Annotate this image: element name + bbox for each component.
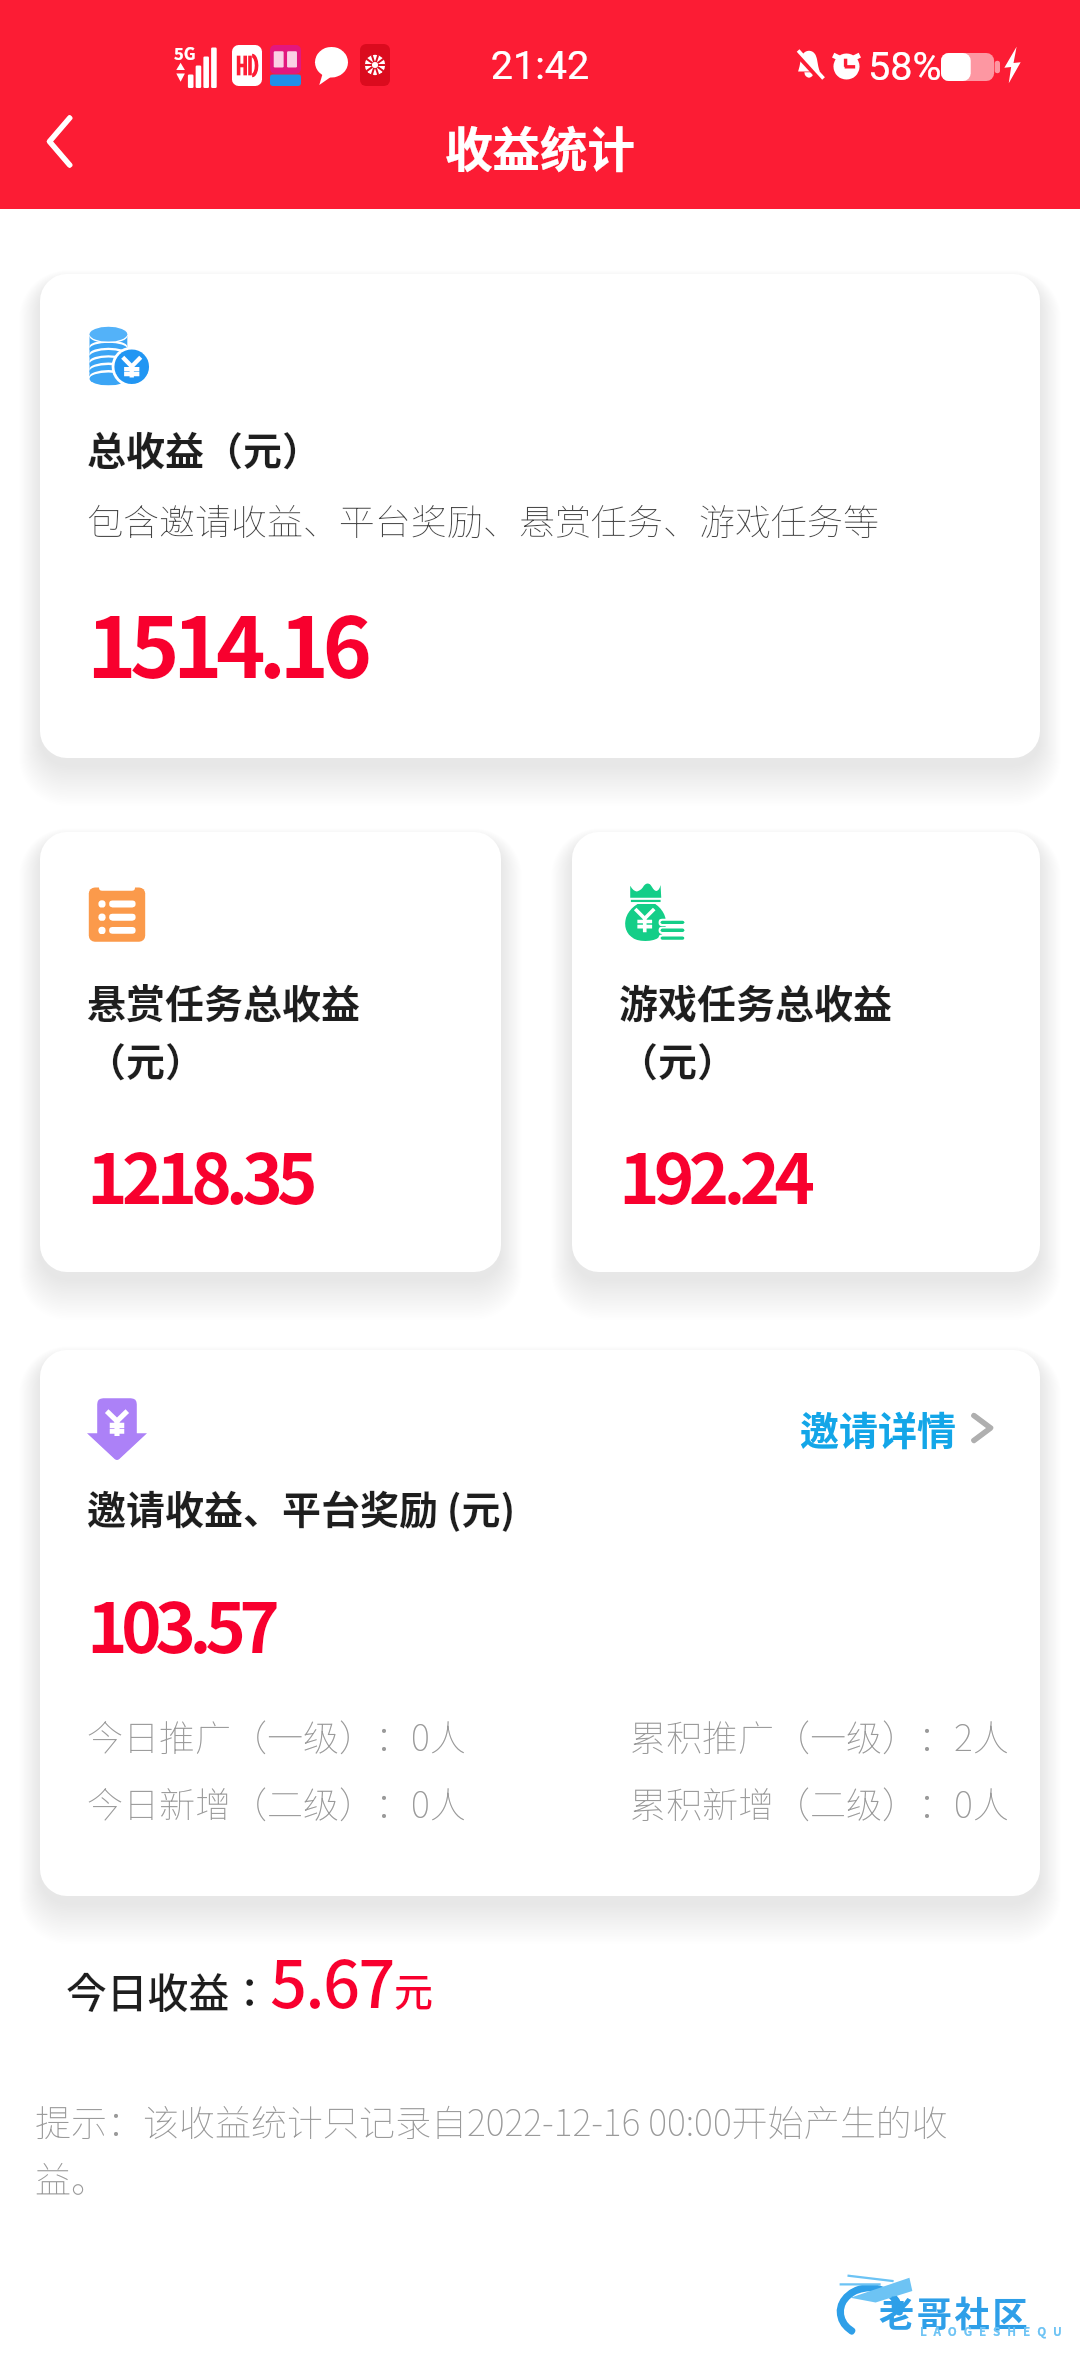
staticText: 1514.16 [87,581,366,703]
staticText: 累积推广（一级）：2人 [630,1709,1009,1760]
staticText: 103.57 [87,1573,274,1673]
staticText: 今日收益： [66,1961,270,2020]
staticText: 21:42 [0,42,1080,88]
button[interactable]: 总收益（元） [40,274,1040,758]
button[interactable]: 游戏任务总收益 （元） [572,832,1040,1272]
staticText: 1218.35 [87,1124,312,1224]
staticText: 元 [394,1961,434,2017]
staticText: 提示：该收益统计只记录自2022-12-16 00:00开始产生的收益。 [35,2094,971,2204]
staticText: 邀请详情 [800,1400,957,1456]
staticText: 老哥社区 [879,2286,1031,2337]
staticText: 今日新增（二级）：0人 [87,1776,466,1827]
staticText: 5G [174,41,196,65]
staticText: 58% [868,43,942,89]
staticText: 游戏任务总收益 （元） [619,973,893,1088]
staticText: 5.67 [270,1932,394,2026]
staticText: 192.24 [619,1124,809,1224]
button[interactable]: 邀请详情 [40,1350,1040,1896]
staticText: LAOGESHEQU [920,2322,1069,2339]
button[interactable]: 悬赏任务总收益 （元） [40,832,501,1272]
button[interactable]: Back [0,90,119,192]
staticText: 包含邀请收益、平台奖励、悬赏任务、游戏任务等 [87,493,880,545]
staticText: 累积新增（二级）：0人 [630,1776,1009,1827]
button[interactable]: 邀请详情 [800,1400,996,1456]
staticText: 总收益（元） [87,420,322,476]
staticText: 邀请收益、平台奖励 (元) [87,1479,516,1535]
staticText: 今日推广（一级）：0人 [87,1709,466,1760]
staticText: 收益统计 [0,112,1080,181]
staticText: 悬赏任务总收益 （元） [87,973,361,1088]
